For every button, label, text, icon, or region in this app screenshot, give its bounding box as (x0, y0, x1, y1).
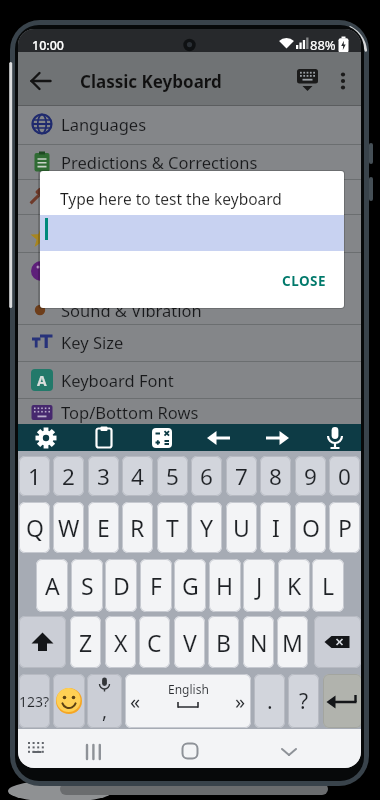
button[interactable]: B (208, 616, 239, 668)
button[interactable]: P (329, 502, 360, 553)
button[interactable]: J (243, 559, 275, 612)
staticText: 3 (97, 461, 110, 492)
staticText: English (168, 681, 209, 697)
button[interactable]: Y (191, 502, 222, 553)
button[interactable] (264, 426, 290, 450)
button[interactable]: 0 (329, 456, 360, 496)
staticText: P (338, 512, 352, 543)
button[interactable]: I (260, 502, 291, 553)
button[interactable] (53, 674, 85, 728)
staticText: Languages (61, 113, 147, 135)
button[interactable]: « (125, 674, 251, 728)
button[interactable]: 1 (19, 456, 50, 496)
staticText: E (97, 512, 110, 543)
button[interactable]: F (140, 559, 172, 612)
button[interactable] (314, 616, 361, 668)
button[interactable]: Z (70, 616, 101, 668)
button[interactable] (82, 739, 106, 765)
button[interactable] (332, 67, 354, 95)
button[interactable]: 7 (226, 456, 257, 496)
button[interactable]: H (209, 559, 241, 612)
staticText: R (130, 512, 145, 543)
button[interactable] (294, 65, 322, 95)
button[interactable]: G (174, 559, 206, 612)
staticText: D (113, 570, 130, 601)
staticText: Z (79, 627, 93, 658)
staticText: A (45, 570, 60, 601)
button[interactable]: C (139, 616, 170, 668)
staticText: Q (26, 512, 44, 543)
staticText: 6 (200, 461, 213, 492)
button[interactable]: 2 (53, 456, 84, 496)
staticText: L (322, 570, 335, 601)
staticText: 2 (62, 461, 75, 492)
button[interactable] (92, 426, 116, 450)
staticText: H (216, 570, 234, 601)
staticText: K (287, 570, 302, 601)
button[interactable] (150, 426, 174, 450)
button[interactable]: , (87, 674, 122, 728)
button[interactable]: U (226, 502, 257, 553)
staticText: S (81, 570, 94, 601)
staticText: C (147, 627, 162, 658)
button[interactable]: L (312, 559, 344, 612)
staticText: ? (299, 687, 309, 716)
staticText: , (102, 698, 108, 724)
button[interactable]: . (254, 674, 285, 728)
button[interactable] (323, 426, 347, 450)
button[interactable]: K (278, 559, 310, 612)
button[interactable] (19, 616, 66, 668)
button[interactable]: R (122, 502, 153, 553)
button[interactable] (18, 361, 361, 399)
button[interactable]: N (243, 616, 274, 668)
staticText: Type here to test the keyboard (60, 188, 282, 209)
button[interactable] (18, 393, 361, 431)
staticText: G (182, 570, 199, 601)
staticText: « (130, 688, 141, 715)
button[interactable] (18, 105, 361, 143)
button[interactable]: 4 (122, 456, 153, 496)
button[interactable] (26, 67, 56, 95)
staticText: O (302, 512, 320, 543)
button[interactable]: X (105, 616, 136, 668)
staticText: F (150, 570, 162, 601)
button[interactable]: 123? (19, 674, 50, 728)
staticText: 1 (28, 461, 41, 492)
button[interactable] (323, 674, 361, 728)
staticText: . (267, 687, 273, 716)
button[interactable]: M (277, 616, 308, 668)
button[interactable]: Q (19, 502, 50, 553)
button[interactable]: O (295, 502, 326, 553)
staticText: Predictions & Corrections (61, 151, 258, 173)
button[interactable] (34, 426, 58, 450)
button[interactable]: W (53, 502, 84, 553)
button[interactable]: ? (288, 674, 319, 728)
staticText: 88% (310, 36, 336, 54)
staticText: Y (200, 512, 214, 543)
button[interactable]: E (88, 502, 119, 553)
button[interactable]: V (174, 616, 205, 668)
button[interactable]: 3 (88, 456, 119, 496)
button[interactable]: 9 (295, 456, 326, 496)
staticText: N (250, 627, 268, 658)
button[interactable] (206, 426, 232, 450)
button[interactable] (24, 739, 50, 759)
button[interactable] (18, 323, 361, 361)
button[interactable] (18, 143, 361, 181)
button[interactable]: 5 (157, 456, 188, 496)
button[interactable]: 8 (260, 456, 291, 496)
staticText: T (166, 512, 179, 543)
staticText: CLOSE (282, 272, 327, 290)
button[interactable]: T (157, 502, 188, 553)
button[interactable]: S (71, 559, 103, 612)
staticText: W (58, 512, 80, 543)
button[interactable]: A (36, 559, 68, 612)
staticText: Top/Bottom Rows (61, 401, 199, 423)
button[interactable]: CLOSE (268, 267, 340, 295)
staticText: Sound & Vibration (61, 299, 202, 321)
staticText: 5 (166, 461, 179, 492)
button[interactable] (180, 741, 200, 763)
button[interactable]: 6 (191, 456, 222, 496)
button[interactable]: D (105, 559, 137, 612)
button[interactable] (278, 741, 300, 763)
